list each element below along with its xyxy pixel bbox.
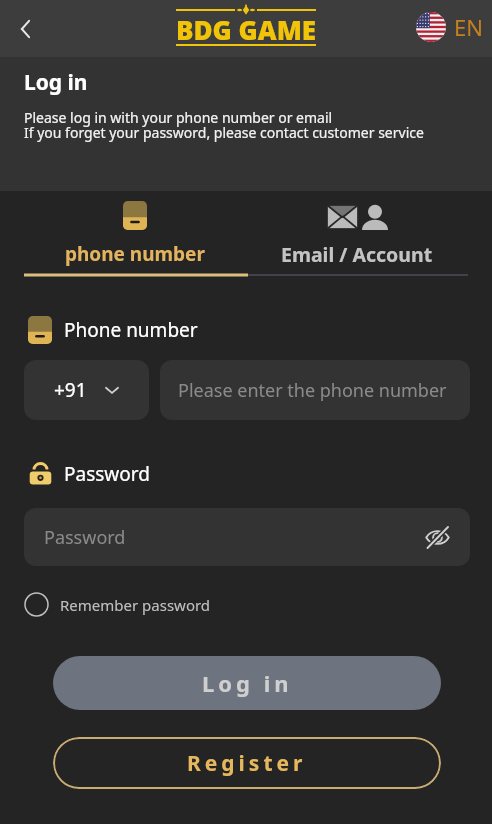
staticText: Log in bbox=[24, 68, 88, 97]
button[interactable]: Remember password bbox=[24, 592, 211, 617]
staticText: phone number bbox=[65, 241, 205, 267]
staticText: Log in bbox=[202, 668, 293, 698]
staticText: +91 bbox=[54, 377, 87, 403]
staticText: Register bbox=[187, 749, 307, 778]
staticText: Password bbox=[44, 525, 126, 550]
button[interactable]: Register bbox=[53, 737, 441, 789]
button[interactable]: Email / Account bbox=[246, 191, 468, 277]
button[interactable]: +91 bbox=[24, 360, 149, 420]
staticText: Please enter the phone number bbox=[178, 378, 447, 403]
button[interactable]: Log in bbox=[53, 656, 441, 710]
staticText: Remember password bbox=[60, 595, 211, 615]
staticText: BDG GAME bbox=[176, 12, 317, 47]
staticText: Please log in with your phone number or … bbox=[24, 108, 424, 142]
staticText: Phone number bbox=[64, 317, 198, 343]
button[interactable]: Show password bbox=[421, 521, 453, 553]
button[interactable]: Password bbox=[24, 508, 470, 566]
button[interactable]: EN bbox=[416, 12, 483, 42]
button[interactable]: Back bbox=[6, 9, 46, 49]
staticText: Email / Account bbox=[281, 241, 433, 268]
staticText: Password bbox=[64, 461, 150, 487]
staticText: EN bbox=[454, 12, 483, 42]
button[interactable]: Please enter the phone number bbox=[160, 360, 470, 420]
button[interactable]: phone number bbox=[24, 191, 246, 277]
